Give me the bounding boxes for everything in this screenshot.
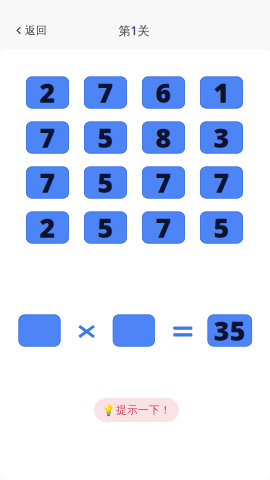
button[interactable]: 💡 <box>94 398 179 422</box>
staticText: 5 <box>213 210 229 245</box>
staticText: 5 <box>97 120 113 155</box>
button[interactable]: 8 <box>142 121 185 153</box>
staticText: 3 <box>213 120 229 155</box>
button[interactable]: 7 <box>142 166 185 198</box>
button[interactable]: 5 <box>84 121 127 153</box>
button[interactable]: 35 <box>208 314 252 346</box>
button[interactable]: Empty number slot <box>18 314 60 346</box>
staticText: 7 <box>213 165 229 200</box>
button[interactable]: 返回 <box>4 17 59 43</box>
staticText: 第1关 <box>118 22 149 38</box>
button[interactable]: 7 <box>26 166 69 198</box>
staticText: 1 <box>213 75 229 110</box>
staticText: 返回 <box>25 24 47 37</box>
button[interactable]: 7 <box>84 76 127 108</box>
button[interactable]: 2 <box>26 76 69 108</box>
button[interactable]: 7 <box>26 121 69 153</box>
staticText: 35 <box>214 313 246 348</box>
button[interactable]: Empty number slot <box>113 314 155 346</box>
staticText: 7 <box>97 75 113 110</box>
button[interactable]: 7 <box>200 166 243 198</box>
button[interactable]: 5 <box>84 211 127 243</box>
button[interactable]: 3 <box>200 121 243 153</box>
button[interactable]: 7 <box>142 211 185 243</box>
staticText: 7 <box>39 165 55 200</box>
staticText: 2 <box>39 75 55 110</box>
staticText: 💡 <box>102 404 115 416</box>
staticText: 5 <box>97 210 113 245</box>
staticText: 7 <box>39 120 55 155</box>
staticText: 7 <box>155 210 171 245</box>
button[interactable]: 1 <box>200 76 243 108</box>
staticText: 8 <box>155 120 171 155</box>
staticText: 5 <box>97 165 113 200</box>
button[interactable]: 2 <box>26 211 69 243</box>
button[interactable]: 5 <box>200 211 243 243</box>
button[interactable]: 5 <box>84 166 127 198</box>
staticText: 2 <box>39 210 55 245</box>
staticText: 6 <box>155 75 171 110</box>
button[interactable]: 6 <box>142 76 185 108</box>
staticText: 7 <box>155 165 171 200</box>
staticText: 提示一下！ <box>116 403 171 416</box>
